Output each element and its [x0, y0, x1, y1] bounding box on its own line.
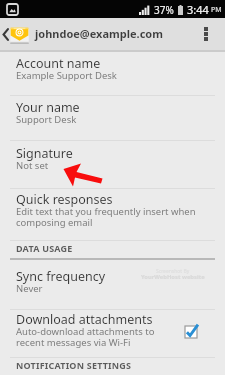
button[interactable]: Your name	[0, 96, 225, 141]
staticText: Auto-download attachments to	[16, 325, 155, 338]
staticText: Download attachments	[16, 311, 153, 328]
staticText: Not set	[16, 159, 49, 172]
staticText: DATA USAGE	[16, 242, 73, 254]
button[interactable]: Signature	[0, 141, 225, 189]
staticText: Signature	[16, 145, 73, 162]
staticText: Account name	[16, 55, 101, 72]
staticText: recent messages via Wi-Fi	[16, 336, 131, 349]
staticText: Edit text that you frequently insert whe…	[16, 205, 196, 218]
staticText: Sync frequency	[16, 268, 106, 285]
staticText: Never	[16, 282, 43, 295]
staticText: Example Support Desk	[16, 69, 117, 82]
staticText: johndoe@example.com	[35, 26, 163, 41]
staticText: Your name	[16, 99, 80, 116]
button[interactable]: Quick responses	[0, 189, 225, 241]
button[interactable]: Account name	[0, 52, 225, 96]
staticText: composing email	[16, 216, 93, 229]
staticText: Support Desk	[16, 113, 77, 126]
staticText: YourWebHost website	[141, 273, 205, 281]
staticText: 3:44	[187, 2, 209, 17]
button[interactable]: Navigate up	[0, 18, 30, 50]
staticText: PM	[211, 5, 222, 15]
button[interactable]: More options	[190, 18, 222, 50]
staticText: 37%	[154, 3, 174, 17]
staticText: Quick responses	[16, 191, 113, 208]
button[interactable]: Download attachments toggle	[183, 324, 199, 340]
button[interactable]: Download attachments	[0, 310, 225, 358]
staticText: Screenshot By	[156, 268, 190, 275]
staticText: NOTIFICATION SETTINGS	[16, 359, 132, 371]
button[interactable]: Sync frequency	[0, 260, 225, 310]
